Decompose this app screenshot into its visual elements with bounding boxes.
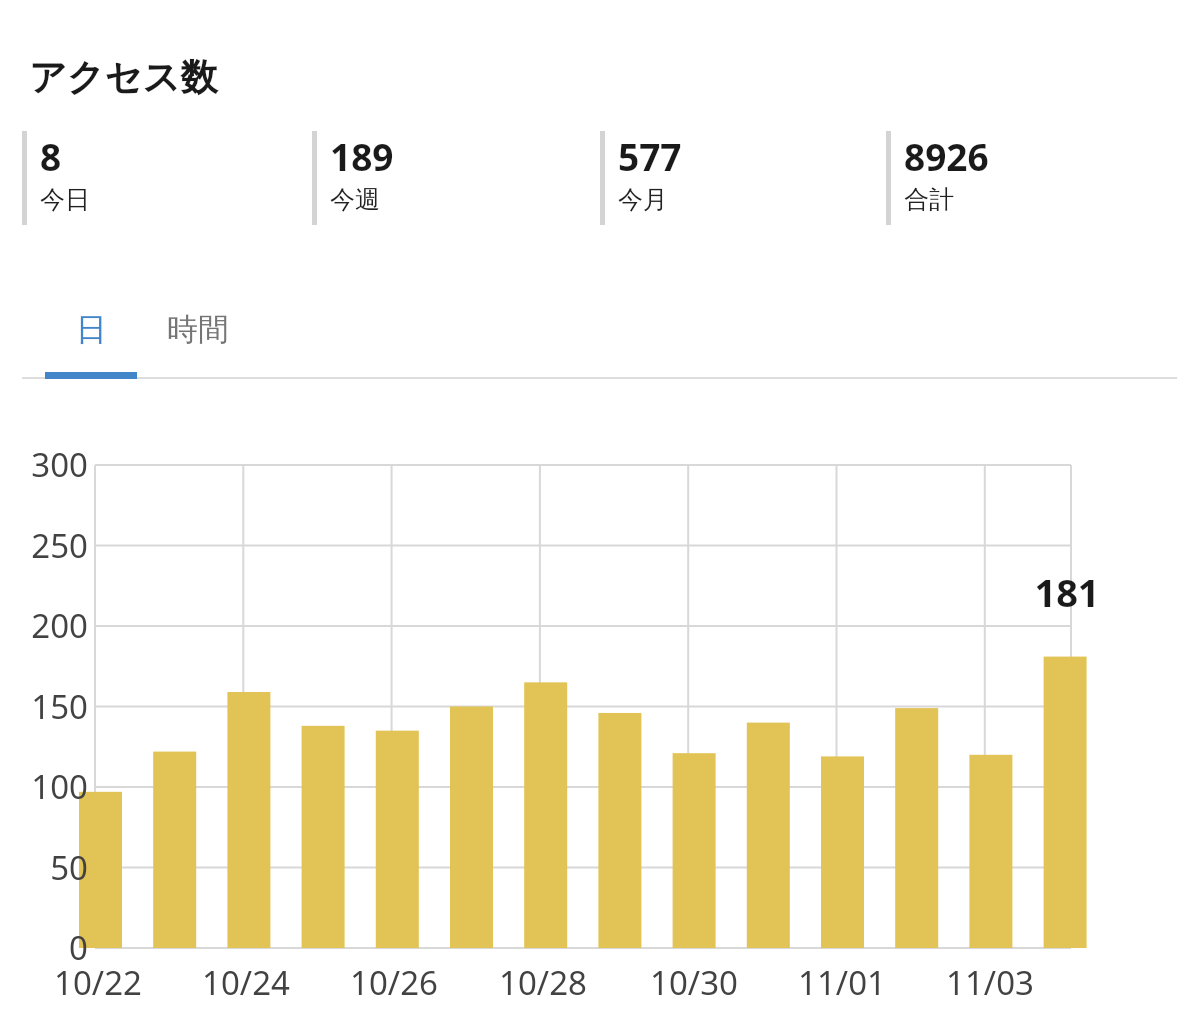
staticText: 今日 bbox=[40, 184, 90, 215]
staticText: 時間 bbox=[167, 310, 229, 349]
staticText: 0 bbox=[8, 925, 88, 970]
staticText: 合計 bbox=[904, 184, 954, 215]
staticText: 10/30 bbox=[614, 960, 774, 1005]
staticText: 181 bbox=[987, 566, 1147, 618]
staticText: 今週 bbox=[330, 184, 380, 215]
staticText: 8 bbox=[40, 131, 62, 181]
staticText: アクセス数 bbox=[29, 54, 218, 101]
staticText: 8926 bbox=[904, 131, 989, 181]
staticText: 日 bbox=[76, 310, 107, 349]
staticText: 10/22 bbox=[18, 960, 178, 1005]
button[interactable]: 189 bbox=[312, 131, 572, 227]
staticText: 200 bbox=[8, 603, 88, 648]
staticText: 10/24 bbox=[166, 960, 326, 1005]
staticText: 今月 bbox=[618, 184, 668, 215]
staticText: 300 bbox=[8, 442, 88, 487]
button[interactable]: 時間 bbox=[145, 295, 251, 379]
button[interactable]: 日 bbox=[45, 295, 137, 379]
staticText: 189 bbox=[330, 131, 394, 181]
staticText: 150 bbox=[8, 684, 88, 729]
button[interactable]: 8926 bbox=[886, 131, 1146, 227]
staticText: 10/26 bbox=[314, 960, 474, 1005]
staticText: 100 bbox=[8, 764, 88, 809]
staticText: 11/01 bbox=[762, 960, 922, 1005]
staticText: 10/28 bbox=[463, 960, 623, 1005]
staticText: 577 bbox=[618, 131, 682, 181]
staticText: 50 bbox=[8, 845, 88, 890]
other: Daily access bar chart bbox=[0, 0, 1200, 1019]
button[interactable]: 8 bbox=[22, 131, 282, 227]
staticText: 11/03 bbox=[910, 960, 1070, 1005]
staticText: 250 bbox=[8, 523, 88, 568]
button[interactable]: 577 bbox=[600, 131, 860, 227]
